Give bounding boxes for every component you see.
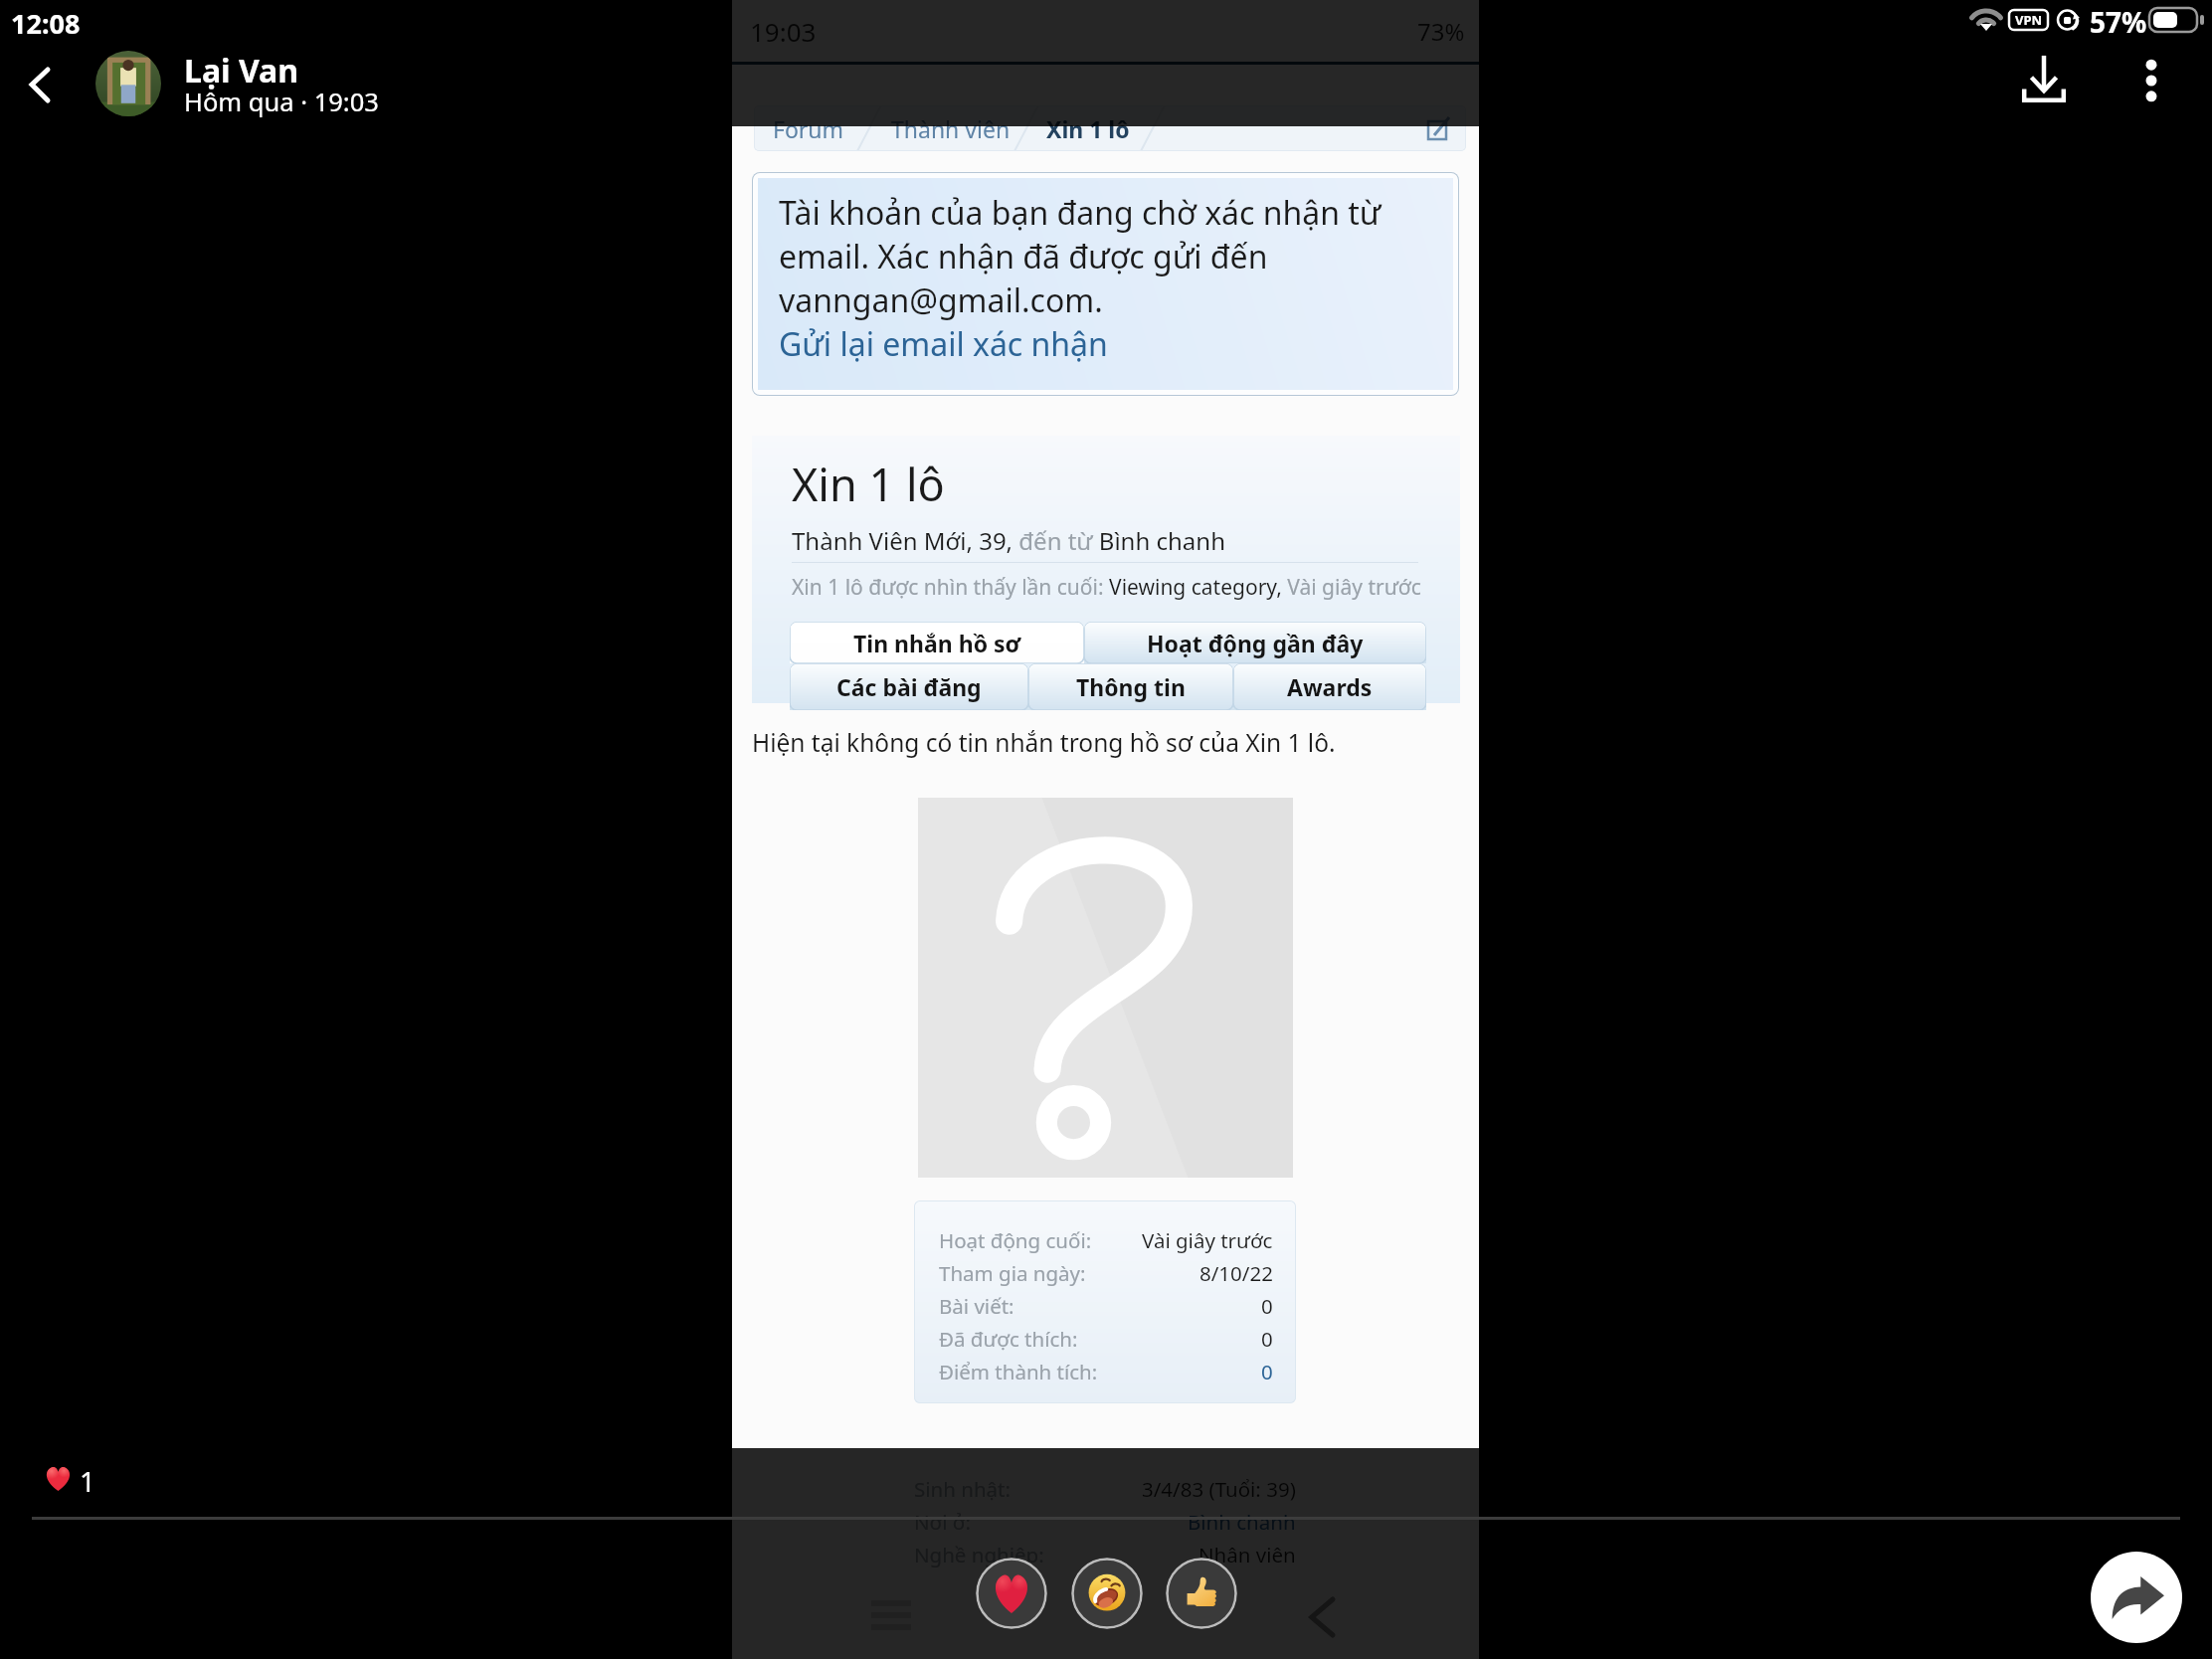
staticText: Điểm thành tích: bbox=[939, 1358, 1098, 1385]
staticText: Awards bbox=[1287, 671, 1373, 702]
button[interactable]: Download bbox=[2011, 48, 2077, 113]
staticText: 19:03 bbox=[750, 14, 817, 49]
staticText: Bình chanh bbox=[1188, 1508, 1296, 1536]
staticText: Thành Viên Mới, 39, đến từ Bình chanh bbox=[792, 524, 1225, 557]
button[interactable]: React bbox=[976, 1558, 1047, 1629]
staticText: Xin 1 lô bbox=[792, 454, 945, 514]
staticText: Tham gia ngày: bbox=[939, 1259, 1086, 1287]
button[interactable]: More options bbox=[2119, 48, 2184, 113]
staticText: 3/4/83 (Tuổi: 39) bbox=[1142, 1475, 1296, 1503]
button[interactable]: Share bbox=[2091, 1552, 2182, 1643]
staticText: Hoạt động gần đây bbox=[1147, 628, 1364, 658]
staticText: Tài khoản của bạn đang chờ xác nhận từ e… bbox=[779, 191, 1420, 322]
button[interactable]: React bbox=[1166, 1558, 1237, 1629]
button[interactable]: React bbox=[1071, 1558, 1143, 1629]
button[interactable]: Lại Van bbox=[92, 47, 390, 120]
staticText: Lại Van bbox=[184, 49, 299, 92]
staticText: 1 bbox=[80, 1462, 96, 1500]
button[interactable]: Thông tin bbox=[1028, 663, 1233, 710]
staticText: Sinh nhật: bbox=[914, 1475, 1011, 1503]
staticText: 0 bbox=[1261, 1292, 1273, 1320]
staticText: Các bài đăng bbox=[836, 671, 982, 702]
staticText: Nghề nghiệp: bbox=[914, 1541, 1044, 1568]
button[interactable]: 1 reaction bbox=[38, 1458, 107, 1502]
staticText: Nơi ở: bbox=[914, 1508, 971, 1536]
button[interactable]: Awards bbox=[1233, 663, 1426, 710]
staticText: 73% bbox=[1417, 15, 1465, 48]
button[interactable]: Navigate back bbox=[1303, 1595, 1343, 1639]
button[interactable]: Gửi lại email xác nhận bbox=[779, 322, 1108, 366]
staticText: VPN bbox=[2015, 11, 2043, 29]
staticText: Nhân viên bbox=[1198, 1541, 1296, 1568]
staticText: Forum bbox=[773, 113, 844, 144]
staticText: 12:08 bbox=[11, 5, 81, 42]
button[interactable]: Tin nhắn hồ sơ bbox=[790, 622, 1084, 663]
staticText: Hoạt động cuối: bbox=[939, 1226, 1092, 1254]
staticText: Đã được thích: bbox=[939, 1325, 1078, 1353]
button[interactable]: Back bbox=[8, 53, 72, 116]
staticText: Xin 1 lô được nhìn thấy lần cuối: Viewin… bbox=[792, 573, 1421, 602]
staticText: Hôm qua · 19:03 bbox=[184, 85, 379, 119]
staticText: Xin 1 lô bbox=[1046, 113, 1130, 144]
staticText: Hiện tại không có tin nhắn trong hồ sơ c… bbox=[752, 726, 1336, 759]
button[interactable]: Các bài đăng bbox=[790, 663, 1028, 710]
staticText: Bài viết: bbox=[939, 1292, 1014, 1320]
staticText: 0 bbox=[1261, 1358, 1273, 1385]
staticText: Vài giây trước bbox=[1142, 1226, 1273, 1254]
staticText: 0 bbox=[1261, 1325, 1273, 1353]
staticText: Thành viên bbox=[891, 113, 1011, 144]
staticText: Tin nhắn hồ sơ bbox=[853, 628, 1021, 658]
staticText: 57% bbox=[2090, 3, 2147, 41]
button[interactable]: Hoạt động gần đây bbox=[1084, 622, 1426, 663]
staticText: 8/10/22 bbox=[1199, 1259, 1273, 1287]
staticText: Thông tin bbox=[1076, 671, 1186, 702]
